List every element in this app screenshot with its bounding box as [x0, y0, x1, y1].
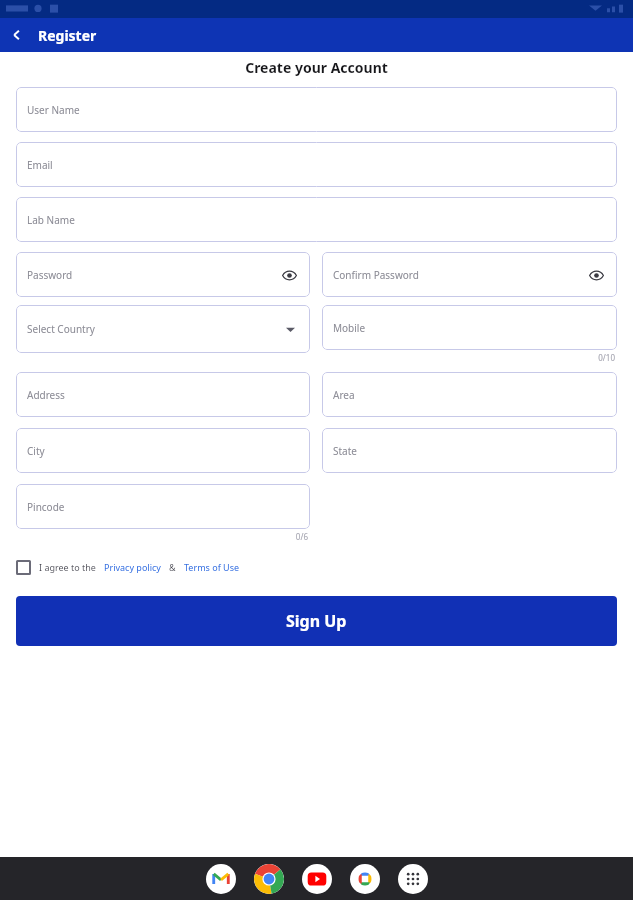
button[interactable]: Privacy policy [104, 561, 161, 573]
staticText: Confirm Password [333, 268, 419, 282]
button[interactable]: Gmail [206, 864, 236, 894]
button[interactable]: All apps [398, 864, 428, 894]
button[interactable]: Select Country [16, 305, 310, 353]
staticText: State [333, 444, 357, 458]
button[interactable]: Sign Up [16, 596, 617, 646]
staticText: I agree to the [39, 561, 96, 573]
button[interactable]: Terms of Use [184, 561, 240, 573]
button[interactable]: Toggle password visibility [279, 265, 299, 285]
button[interactable]: City [16, 428, 310, 473]
staticText: 0/10 [322, 352, 615, 363]
staticText: Register [38, 26, 97, 45]
button[interactable]: YouTube [302, 864, 332, 894]
button[interactable]: Google Photos [350, 864, 380, 894]
staticText: City [27, 444, 45, 458]
staticText: Email [27, 158, 53, 172]
staticText: User Name [27, 103, 80, 117]
button[interactable]: Address [16, 372, 310, 417]
button[interactable]: Toggle password visibility [586, 265, 606, 285]
staticText: Password [27, 268, 73, 282]
button[interactable]: I agree to the terms [10, 554, 36, 580]
staticText: & [169, 561, 176, 573]
staticText: Terms of Use [184, 561, 240, 573]
button[interactable]: Password [16, 252, 310, 297]
staticText: Create your Account [0, 58, 633, 77]
staticText: Mobile [333, 321, 366, 335]
button[interactable]: Confirm Password [322, 252, 617, 297]
button[interactable]: Lab Name [16, 197, 617, 242]
staticText: Pincode [27, 500, 65, 514]
button[interactable]: Email [16, 142, 617, 187]
staticText: Sign Up [286, 610, 347, 632]
staticText: Select Country [27, 322, 95, 336]
staticText: 0/6 [16, 531, 308, 542]
button[interactable]: Chrome [254, 864, 284, 894]
button[interactable]: Select country [281, 320, 299, 338]
staticText: Privacy policy [104, 561, 161, 573]
button[interactable]: Back [0, 18, 34, 52]
button[interactable]: Pincode [16, 484, 310, 529]
staticText: Address [27, 388, 65, 402]
button[interactable]: Area [322, 372, 617, 417]
staticText: Lab Name [27, 213, 75, 227]
staticText: Area [333, 388, 355, 402]
button[interactable]: State [322, 428, 617, 473]
button[interactable]: Mobile [322, 305, 617, 350]
button[interactable]: User Name [16, 87, 617, 132]
